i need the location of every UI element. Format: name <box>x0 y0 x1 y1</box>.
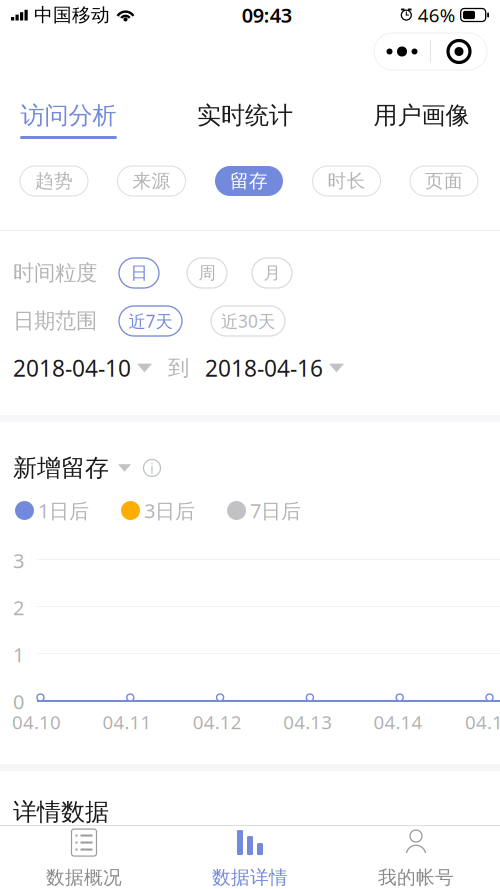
staticText: 3 <box>13 547 24 574</box>
staticText: 04.10 <box>12 710 61 734</box>
staticText: 新增留存 <box>13 453 109 483</box>
button[interactable]: 数据概况 <box>1 825 167 889</box>
staticText: 1日后 <box>38 497 89 524</box>
button[interactable]: 访问分析 <box>20 100 117 154</box>
button[interactable]: More options <box>374 33 430 70</box>
staticText: 趋势 <box>35 169 73 192</box>
button[interactable]: Close mini program <box>431 33 487 70</box>
button[interactable]: 近30天 <box>211 306 285 336</box>
staticText: 到 <box>168 355 189 381</box>
staticText: 04.1 <box>465 710 500 734</box>
staticText: 0 <box>13 688 24 715</box>
button[interactable]: About new retention <box>142 458 162 478</box>
button[interactable]: 页面 <box>410 166 478 196</box>
button[interactable]: 留存 <box>215 166 283 196</box>
staticText: 留存 <box>230 169 268 192</box>
staticText: 我的帐号 <box>378 866 454 889</box>
button[interactable]: 月 <box>252 258 292 288</box>
staticText: 来源 <box>132 169 170 192</box>
button[interactable]: 时长 <box>312 166 380 196</box>
staticText: i <box>150 458 154 478</box>
button[interactable]: 我的帐号 <box>333 825 499 889</box>
staticText: 时长 <box>327 169 365 192</box>
button[interactable]: 实时统计 <box>196 100 293 154</box>
staticText: 时间粒度 <box>13 260 97 286</box>
staticText: 日期范围 <box>13 308 97 334</box>
staticText: 1 <box>13 641 24 668</box>
staticText: 实时统计 <box>197 101 293 130</box>
staticText: 近7天 <box>128 309 172 332</box>
staticText: 04.12 <box>193 710 242 734</box>
button[interactable]: 周 <box>187 258 227 288</box>
staticText: 日 <box>130 262 147 284</box>
staticText: 详情数据 <box>13 797 109 827</box>
button[interactable]: 数据详情 <box>167 825 333 889</box>
staticText: 7日后 <box>250 497 301 524</box>
staticText: 3日后 <box>144 497 195 524</box>
staticText: 页面 <box>425 169 463 192</box>
staticText: 04.11 <box>102 710 151 734</box>
button[interactable]: 来源 <box>117 166 185 196</box>
staticText: 2018-04-10 <box>13 353 131 383</box>
staticText: 46% <box>418 3 456 27</box>
staticText: 04.14 <box>374 710 423 734</box>
staticText: 用户画像 <box>373 101 469 130</box>
staticText: 数据概况 <box>46 866 122 889</box>
staticText: 中国移动 <box>34 3 110 26</box>
button[interactable]: 日 <box>119 258 159 288</box>
staticText: 周 <box>198 262 215 284</box>
staticText: 09:43 <box>242 2 292 28</box>
staticText: 访问分析 <box>20 101 116 130</box>
button[interactable]: 近7天 <box>119 306 182 336</box>
button[interactable]: 趋势 <box>20 166 88 196</box>
button[interactable]: 2018-04-16 <box>205 353 344 383</box>
staticText: 数据详情 <box>212 866 288 889</box>
staticText: 近30天 <box>221 309 275 332</box>
button[interactable]: 用户画像 <box>373 100 470 154</box>
button[interactable]: 2018-04-10 <box>13 353 152 383</box>
staticText: 04.13 <box>283 710 332 734</box>
staticText: 2 <box>13 594 24 621</box>
staticText: 2018-04-16 <box>205 353 323 383</box>
staticText: 月 <box>263 262 280 284</box>
